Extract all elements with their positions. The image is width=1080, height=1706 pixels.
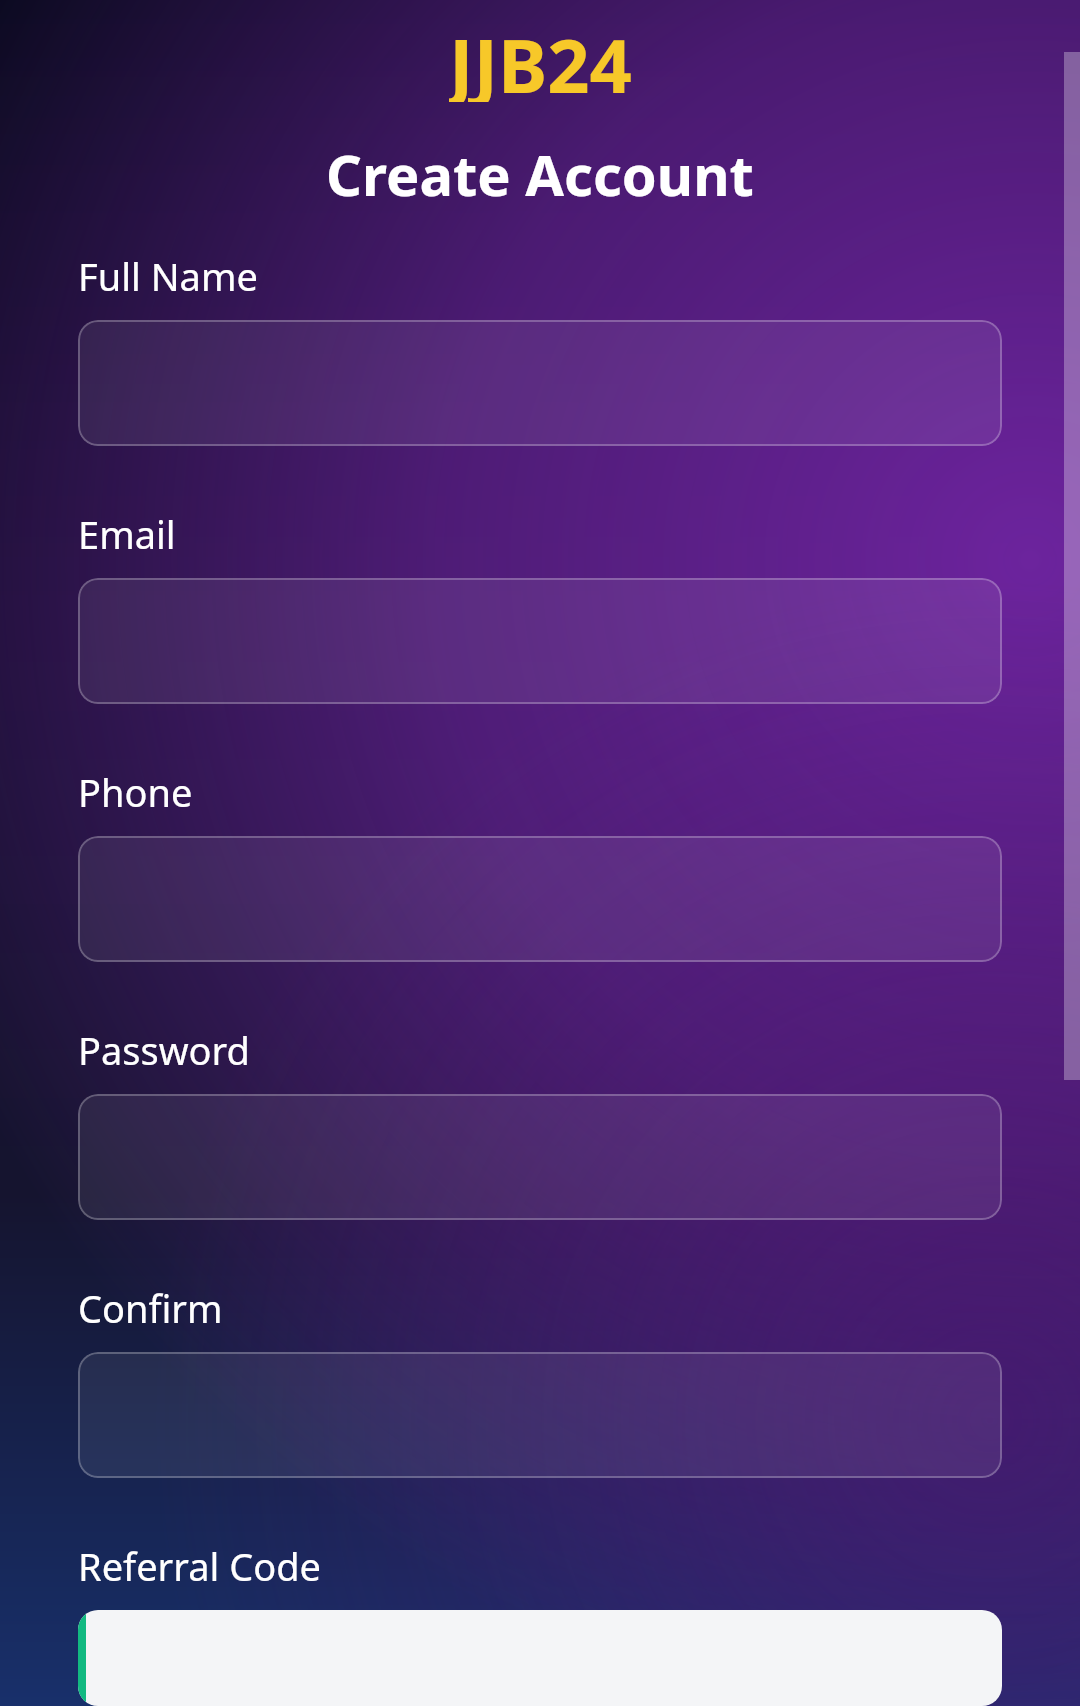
staticText: Referral Code	[78, 1540, 322, 1592]
button[interactable]: Confirm	[78, 1352, 1002, 1478]
button[interactable]: Referral Code	[78, 1610, 1002, 1706]
button[interactable]: Email	[78, 578, 1002, 704]
staticText: Phone	[78, 766, 193, 818]
other: Scrollbar	[1064, 52, 1080, 1080]
button[interactable]: Full Name	[78, 320, 1002, 446]
staticText: Create Account	[0, 136, 1080, 212]
button[interactable]: Password	[78, 1094, 1002, 1220]
staticText: Confirm	[78, 1282, 223, 1334]
button[interactable]: Phone	[78, 836, 1002, 962]
staticText: Email	[78, 508, 176, 560]
staticText: Full Name	[78, 250, 258, 302]
staticText: JJB24	[449, 14, 632, 102]
staticText: Password	[78, 1024, 250, 1076]
